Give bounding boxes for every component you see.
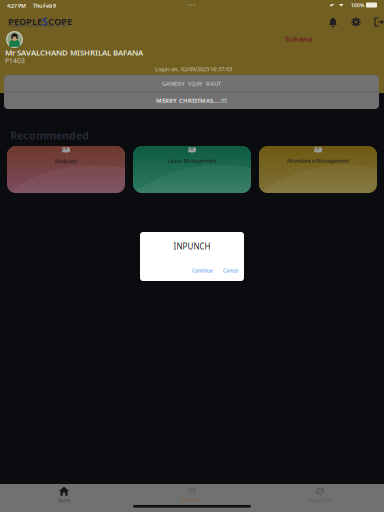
button[interactable]: Notifications	[326, 15, 340, 29]
staticText: Attendance Management	[287, 157, 349, 164]
staticText: S	[42, 14, 48, 28]
button[interactable]: Log out	[372, 15, 384, 29]
button[interactable]: Leave Management	[133, 146, 251, 193]
staticText: MERRY CHRISTMAS....!!!	[156, 96, 227, 105]
staticText: Leave Management	[167, 157, 216, 164]
staticText: Thu Feb 9	[33, 2, 56, 9]
staticText: Mailpost	[55, 157, 77, 165]
staticText: GANESH VIJAY RAUT	[162, 79, 221, 87]
staticText: Continue	[192, 267, 213, 274]
staticText: INPUNCH	[173, 241, 210, 252]
staticText: Suhana	[285, 34, 312, 44]
staticText: Mr SAVALCHAND MISHRILAL BAFANA	[5, 47, 143, 58]
staticText: 100%	[351, 2, 364, 8]
staticText: 4:27 PM	[7, 2, 26, 9]
staticText: • • •	[188, 2, 196, 8]
staticText: Cancel	[223, 267, 238, 274]
staticText: Punch In	[182, 497, 202, 504]
button[interactable]: Mailpost	[7, 146, 125, 193]
button[interactable]: Punch In	[128, 486, 256, 504]
staticText: Punch Out	[308, 497, 332, 504]
button[interactable]: Attendance Management	[259, 146, 377, 193]
staticText: integrated modular solutions for HR	[9, 23, 66, 28]
staticText: P1403	[5, 56, 25, 65]
staticText: PEOPLE	[8, 15, 42, 28]
button[interactable]: Continue	[192, 267, 213, 274]
button[interactable]: Home	[0, 486, 128, 504]
button[interactable]: Cancel	[223, 267, 238, 274]
staticText: Recommended	[10, 128, 89, 142]
staticText: Login on, 02/09/2023 16:37:03	[155, 65, 232, 73]
staticText: COPE	[48, 15, 72, 28]
button[interactable]: Settings	[349, 15, 363, 29]
staticText: Home	[57, 497, 70, 504]
